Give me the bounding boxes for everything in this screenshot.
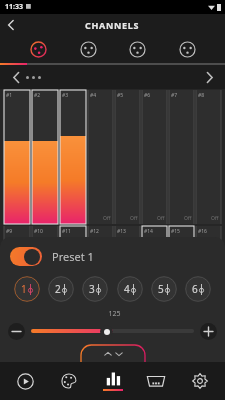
button[interactable]: Next page (199, 67, 219, 87)
button[interactable]: Increase (200, 323, 217, 340)
button[interactable]: #13 (115, 226, 140, 361)
staticText: Off (103, 352, 111, 359)
staticText: 2 (55, 282, 61, 296)
staticText: #16 (198, 228, 207, 235)
button[interactable]: Back (0, 14, 22, 36)
staticText: 125 (108, 309, 121, 319)
button[interactable]: Previous page (6, 67, 26, 87)
button[interactable]: #10 (32, 226, 58, 361)
button[interactable]: #4 (88, 90, 113, 224)
staticText: #3 (62, 92, 69, 99)
staticText: #1 (6, 92, 13, 99)
staticText: #5 (117, 92, 124, 99)
button[interactable]: 1 (14, 276, 40, 302)
button[interactable]: Expand panel (81, 345, 145, 362)
staticText: 6 (192, 282, 198, 296)
staticText: 1 (21, 282, 27, 296)
staticText: #9 (6, 228, 13, 235)
staticText: #11 (62, 228, 71, 235)
button[interactable]: Play (6, 362, 44, 400)
button[interactable]: 6 (185, 276, 211, 302)
staticText: #4 (90, 92, 97, 99)
button[interactable]: #8 (196, 90, 221, 224)
staticText: Off (184, 215, 192, 222)
button[interactable]: #15 (169, 226, 194, 361)
staticText: 11:33 (5, 2, 23, 12)
staticText: #15 (171, 228, 180, 235)
button[interactable]: 4 (117, 276, 143, 302)
staticText: #13 (117, 228, 126, 235)
button[interactable]: Universe 3 (125, 37, 149, 61)
button[interactable]: #3 (60, 90, 86, 224)
staticText: #10 (34, 228, 43, 235)
button[interactable]: 2 (48, 276, 74, 302)
button[interactable]: Decrease (8, 323, 25, 340)
button[interactable]: Stage (137, 362, 175, 400)
button[interactable]: #11 (60, 226, 86, 361)
button[interactable]: #7 (169, 90, 194, 224)
staticText: #12 (90, 228, 99, 235)
button[interactable]: #6 (142, 90, 167, 224)
button[interactable]: Settings (181, 362, 219, 400)
staticText: #8 (198, 92, 205, 99)
staticText: #7 (171, 92, 178, 99)
staticText: Off (130, 215, 138, 222)
button[interactable]: Universe 2 (76, 37, 100, 61)
button[interactable]: Universe 4 (175, 37, 199, 61)
button[interactable]: #12 (88, 226, 113, 361)
button[interactable]: #9 (4, 226, 30, 361)
button[interactable]: 3 (82, 276, 108, 302)
staticText: 3 (89, 282, 95, 296)
button[interactable]: Preset 1 (10, 242, 225, 270)
staticText: 5 (158, 282, 164, 296)
staticText: #6 (144, 92, 151, 99)
button[interactable]: 5 (151, 276, 177, 302)
staticText: Preset 1 (52, 249, 94, 264)
staticText: #2 (34, 92, 41, 99)
staticText: Off (103, 215, 111, 222)
button[interactable]: #2 (32, 90, 58, 224)
button[interactable]: Universe 1 (26, 37, 50, 61)
button[interactable]: Colors (50, 362, 88, 400)
button[interactable]: #16 (196, 226, 221, 361)
button[interactable]: #5 (115, 90, 140, 224)
button[interactable]: Channels (94, 362, 132, 400)
staticText: Off (157, 215, 165, 222)
staticText: Off (211, 215, 219, 222)
button[interactable]: #1 (4, 90, 30, 224)
staticText: #14 (144, 228, 153, 235)
staticText: 4 (124, 282, 130, 296)
staticText: CHANNELS (85, 19, 140, 31)
button[interactable]: #14 (142, 226, 167, 361)
